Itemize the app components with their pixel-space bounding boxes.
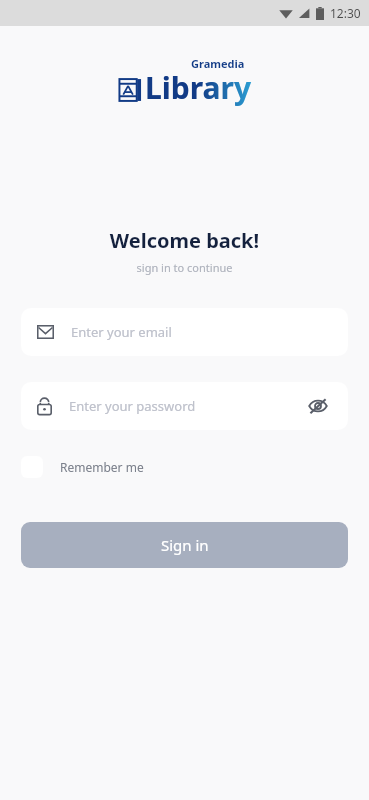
staticText: Enter your password xyxy=(69,397,304,415)
button[interactable]: Enter your password xyxy=(21,382,348,430)
button[interactable]: Sign in xyxy=(21,522,348,568)
staticText: Remember me xyxy=(60,459,144,475)
staticText: Welcome back! xyxy=(0,227,369,254)
button[interactable]: Show password xyxy=(304,392,332,420)
staticText: Sign in xyxy=(161,535,209,555)
staticText: 12:30 xyxy=(330,5,361,21)
staticText: sign in to continue xyxy=(0,260,369,275)
staticText: Gramedia xyxy=(191,56,245,71)
staticText: Library xyxy=(145,67,252,108)
staticText: Enter your email xyxy=(71,323,332,341)
button[interactable]: Enter your email xyxy=(21,308,348,356)
button[interactable]: Remember me xyxy=(21,452,144,482)
